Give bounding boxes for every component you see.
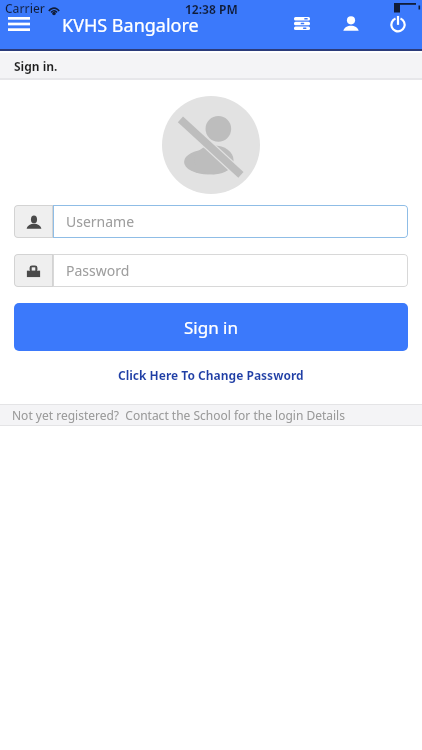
staticText: Carrier [5, 0, 45, 16]
staticText: Click Here To Change Password [118, 367, 304, 383]
staticText: Username [66, 212, 135, 231]
button[interactable]: Click Here To Change Password [0, 365, 422, 385]
staticText: Not yet registered? Contact the School f… [12, 407, 345, 423]
staticText: Password [66, 261, 130, 280]
button[interactable]: Menu [0, 10, 38, 37]
button[interactable]: Settings [276, 10, 328, 37]
staticText: 12:38 PM [185, 1, 238, 17]
staticText: Sign in [184, 316, 238, 339]
staticText: KVHS Bangalore [62, 13, 199, 38]
button[interactable]: Power [374, 10, 422, 37]
button[interactable]: Password [14, 254, 408, 287]
staticText: Sign in. [14, 58, 58, 74]
button[interactable]: Profile [328, 10, 374, 37]
button[interactable]: Sign in [14, 303, 408, 351]
button[interactable]: Username [14, 205, 408, 238]
